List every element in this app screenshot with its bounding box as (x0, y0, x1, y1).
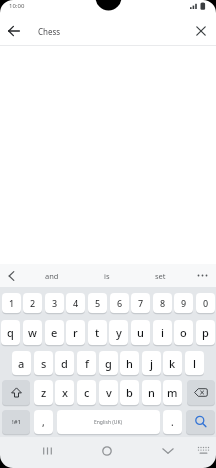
staticText: , (42, 415, 45, 429)
staticText: !#1 (12, 418, 21, 426)
button[interactable] (187, 380, 215, 405)
button[interactable]: m (163, 380, 182, 405)
staticText: 4 (73, 297, 79, 309)
button[interactable]: e (45, 320, 64, 345)
button[interactable]: b (120, 380, 139, 405)
button[interactable] (186, 410, 215, 434)
button[interactable]: v (99, 380, 118, 405)
staticText: k (169, 356, 176, 371)
staticText: Chess (38, 26, 61, 37)
button[interactable]: is (87, 266, 127, 285)
staticText: q (7, 325, 14, 340)
button[interactable]: 1 (2, 293, 21, 313)
staticText: z (41, 385, 47, 400)
staticText: 6 (117, 297, 123, 309)
staticText: w (28, 325, 37, 340)
button[interactable]: p (196, 320, 215, 345)
staticText: English (UK) (94, 419, 123, 426)
button[interactable]: 8 (153, 293, 172, 313)
button[interactable]: w (23, 320, 42, 345)
staticText: d (61, 356, 68, 371)
button[interactable]: . (163, 410, 182, 434)
staticText: set (155, 271, 166, 281)
button[interactable] (194, 441, 213, 460)
staticText: t (95, 325, 100, 340)
staticText: r (73, 325, 78, 340)
button[interactable]: set (140, 266, 180, 285)
staticText: 5 (95, 297, 101, 309)
button[interactable]: s (34, 351, 53, 375)
staticText: e (51, 325, 58, 340)
staticText: j (150, 356, 153, 371)
button[interactable]: 0 (196, 293, 215, 313)
staticText: f (85, 356, 89, 371)
staticText: o (180, 325, 187, 340)
button[interactable]: 3 (45, 293, 64, 313)
button[interactable]: o (174, 320, 193, 345)
button[interactable]: 4 (66, 293, 85, 313)
button[interactable] (2, 266, 20, 285)
button[interactable] (192, 22, 210, 40)
button[interactable]: y (109, 320, 128, 345)
staticText: 7 (138, 297, 144, 309)
staticText: c (84, 385, 90, 400)
staticText: 8 (160, 297, 166, 309)
button[interactable]: l (185, 351, 204, 375)
button[interactable]: a (12, 351, 31, 375)
staticText: s (41, 356, 47, 371)
button[interactable]: n (142, 380, 161, 405)
button[interactable]: x (55, 380, 74, 405)
button[interactable]: h (120, 351, 139, 375)
staticText: l (193, 356, 196, 371)
button[interactable] (97, 441, 116, 460)
staticText: i (161, 325, 164, 340)
staticText: v (106, 385, 112, 400)
button[interactable]: !#1 (2, 410, 30, 434)
button[interactable]: 6 (110, 293, 129, 313)
staticText: 0 (203, 297, 209, 309)
button[interactable] (4, 22, 24, 40)
button[interactable]: and (32, 266, 72, 285)
button[interactable]: g (99, 351, 118, 375)
staticText: 1 (9, 297, 15, 309)
button[interactable]: f (77, 351, 96, 375)
staticText: g (105, 356, 112, 371)
button[interactable]: English (UK) (57, 410, 160, 434)
staticText: and (45, 271, 59, 281)
staticText: p (202, 325, 209, 340)
button[interactable] (158, 441, 177, 460)
staticText: a (18, 356, 25, 371)
button[interactable]: 5 (88, 293, 107, 313)
staticText: n (148, 385, 155, 400)
staticText: m (167, 385, 178, 400)
button[interactable]: 2 (23, 293, 42, 313)
button[interactable]: u (131, 320, 150, 345)
staticText: 10:00 (9, 2, 25, 10)
button[interactable]: j (142, 351, 161, 375)
staticText: 2 (30, 297, 36, 309)
button[interactable]: d (55, 351, 74, 375)
button[interactable]: 9 (174, 293, 193, 313)
staticText: y (116, 325, 122, 340)
staticText: 9 (181, 297, 187, 309)
button[interactable] (2, 380, 30, 405)
staticText: h (126, 356, 133, 371)
staticText: b (126, 385, 133, 400)
button[interactable]: , (34, 410, 53, 434)
button[interactable]: z (34, 380, 53, 405)
button[interactable] (38, 441, 57, 460)
staticText: x (62, 385, 68, 400)
button[interactable]: c (77, 380, 96, 405)
button[interactable]: r (66, 320, 85, 345)
staticText: . (171, 415, 174, 429)
button[interactable]: t (88, 320, 107, 345)
button[interactable]: 7 (131, 293, 150, 313)
button[interactable]: k (163, 351, 182, 375)
staticText: is (104, 271, 110, 281)
button[interactable]: i (153, 320, 172, 345)
button[interactable] (192, 266, 212, 285)
button[interactable]: q (1, 320, 20, 345)
staticText: 3 (52, 297, 58, 309)
staticText: u (137, 325, 144, 340)
